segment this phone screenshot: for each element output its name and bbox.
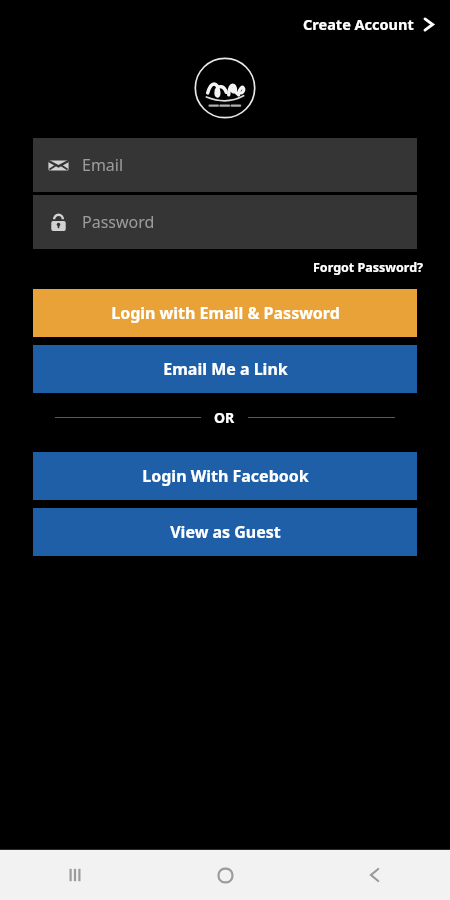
button[interactable]: Forgot Password? [309, 255, 428, 280]
staticText: Password [82, 211, 155, 233]
button[interactable]: Create Account [297, 8, 440, 40]
button[interactable]: Password [33, 195, 417, 249]
button[interactable]: Login with Email & Password [33, 289, 417, 337]
button[interactable]: Recent apps [0, 850, 150, 900]
staticText: Email Me a Link [163, 358, 288, 380]
staticText: Login with Email & Password [111, 302, 340, 324]
button[interactable]: Home [150, 850, 300, 900]
button[interactable]: Email Me a Link [33, 345, 417, 393]
staticText: Email [82, 154, 124, 176]
staticText: Login With Facebook [142, 465, 309, 487]
staticText: Create Account [303, 14, 414, 34]
staticText: View as Guest [170, 521, 281, 543]
button[interactable]: View as Guest [33, 508, 417, 556]
staticText: Forgot Password? [313, 259, 424, 276]
button[interactable]: Login With Facebook [33, 452, 417, 500]
button[interactable]: Email [33, 138, 417, 192]
button[interactable]: Back [300, 850, 450, 900]
staticText: OR [214, 408, 235, 427]
